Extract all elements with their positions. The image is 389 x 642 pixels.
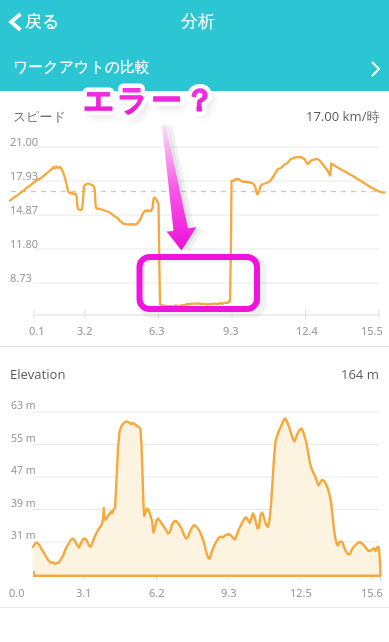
staticText: 3.1 xyxy=(76,585,92,600)
staticText: 分析 xyxy=(181,11,215,32)
staticText: 0.1 xyxy=(29,323,45,338)
staticText: エラー？ xyxy=(83,82,218,120)
staticText: 3.2 xyxy=(77,323,93,338)
staticText: 12.5 xyxy=(290,585,312,600)
staticText: 戻る xyxy=(25,11,60,32)
staticText: 9.3 xyxy=(223,323,239,338)
staticText: Elevation xyxy=(10,365,66,383)
staticText: ワークアウトの比較 xyxy=(13,58,151,77)
staticText: 11.80 xyxy=(10,236,39,251)
staticText: 9.3 xyxy=(221,585,237,600)
button[interactable]: 戻る xyxy=(8,0,60,43)
staticText: 0.0 xyxy=(9,585,25,600)
staticText: スピード xyxy=(13,108,66,124)
staticText: 15.6 xyxy=(361,585,383,600)
staticText: 39 m xyxy=(11,496,36,510)
staticText: 17.00 km/時 xyxy=(306,107,380,125)
staticText: エラー？ xyxy=(83,82,218,120)
staticText: 31 m xyxy=(11,528,36,542)
staticText: 6.2 xyxy=(149,585,165,600)
staticText: 63 m xyxy=(11,398,36,412)
staticText: 14.87 xyxy=(10,202,39,217)
staticText: 6.3 xyxy=(149,323,165,338)
staticText: 15.5 xyxy=(361,323,383,338)
staticText: 47 m xyxy=(11,463,36,477)
staticText: 55 m xyxy=(11,431,36,445)
staticText: 164 m xyxy=(341,365,379,383)
staticText: 17.93 xyxy=(10,168,39,183)
staticText: 21.00 xyxy=(10,134,39,149)
button[interactable]: ワークアウトの比較 xyxy=(0,43,389,91)
staticText: 12.4 xyxy=(296,323,318,338)
staticText: 8.73 xyxy=(10,270,32,285)
